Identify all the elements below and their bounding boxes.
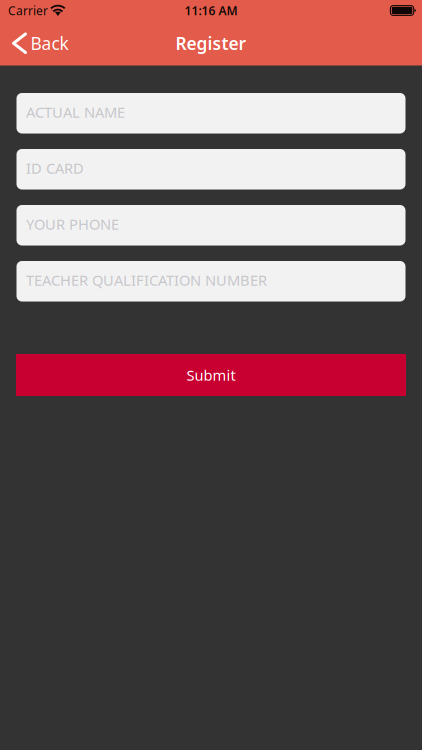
button[interactable]: ACTUAL NAME: [16, 93, 405, 133]
staticText: ID CARD: [26, 158, 84, 178]
staticText: ACTUAL NAME: [26, 102, 125, 122]
button[interactable]: ID CARD: [16, 149, 405, 189]
button[interactable]: Back: [0, 21, 80, 65]
staticText: 11:16 AM: [184, 2, 237, 18]
button[interactable]: YOUR PHONE: [16, 205, 405, 245]
button[interactable]: TEACHER QUALIFICATION NUMBER: [16, 261, 405, 301]
staticText: Carrier: [8, 2, 48, 18]
staticText: Back: [30, 32, 68, 55]
staticText: Register: [175, 32, 246, 55]
staticText: YOUR PHONE: [26, 214, 119, 234]
staticText: Submit: [186, 365, 235, 385]
staticText: TEACHER QUALIFICATION NUMBER: [26, 270, 267, 290]
button[interactable]: Submit: [16, 354, 406, 396]
